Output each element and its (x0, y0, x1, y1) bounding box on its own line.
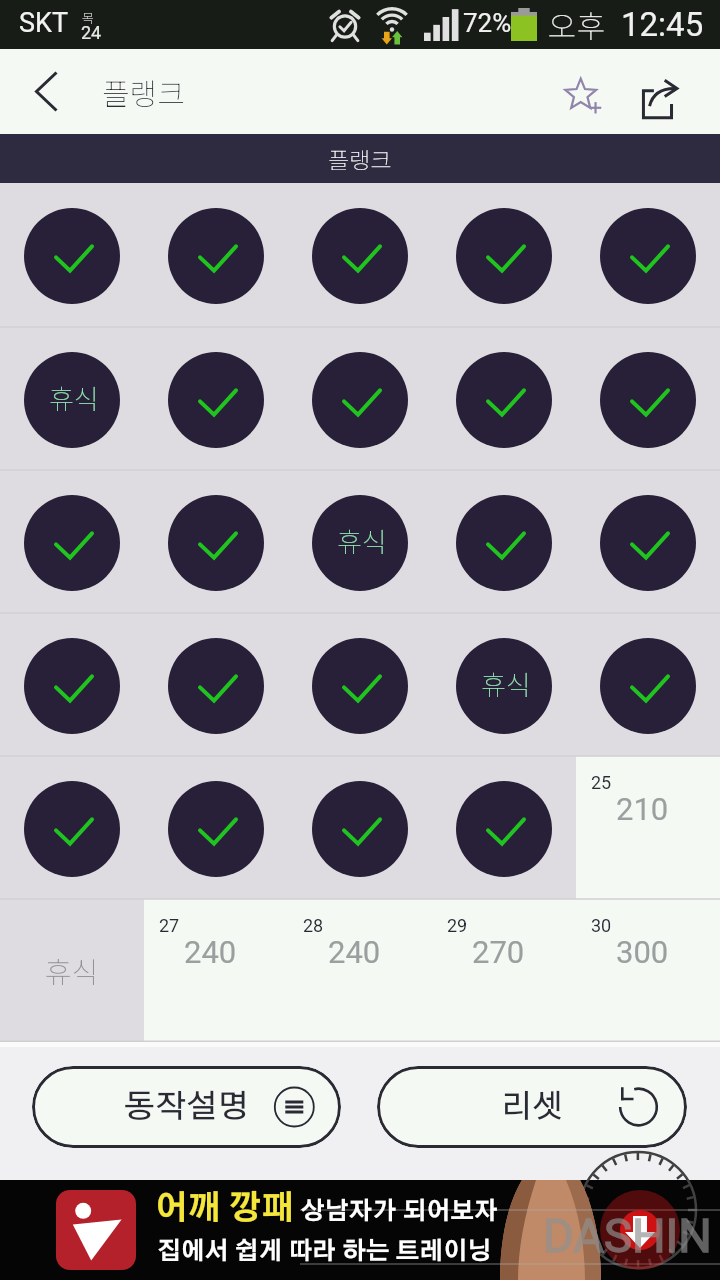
button[interactable]: 휴식 (0, 327, 144, 470)
staticText: 동작설명 (124, 1091, 249, 1123)
button[interactable] (0, 470, 144, 613)
button[interactable] (432, 756, 576, 899)
button[interactable]: 리셋 (377, 1066, 687, 1148)
staticText: 240 (184, 934, 237, 970)
button[interactable]: 동작설명 (32, 1066, 341, 1148)
staticText: 휴식 (49, 378, 99, 417)
button[interactable] (576, 470, 720, 613)
button[interactable]: DASHIN (0, 1180, 720, 1280)
staticText: 28 (303, 915, 324, 936)
staticText: 플랭크 (102, 70, 185, 113)
staticText: 27 (159, 915, 180, 936)
button[interactable] (432, 183, 576, 327)
staticText: 상남자가 되어보자 (301, 1200, 499, 1224)
staticText: 30 (591, 915, 612, 936)
button[interactable]: Share (642, 49, 720, 134)
button[interactable] (288, 183, 432, 327)
button[interactable] (144, 756, 288, 899)
button[interactable]: Favorite (552, 49, 642, 134)
button[interactable]: 29 (432, 899, 576, 1042)
button[interactable] (432, 470, 576, 613)
staticText: DASHIN (543, 1208, 712, 1263)
staticText: 리셋 (501, 1091, 564, 1123)
button[interactable]: 27 (144, 899, 288, 1042)
staticText: 어깨 깡패 (155, 1193, 295, 1226)
button[interactable]: 휴식 (288, 470, 432, 613)
button[interactable] (144, 183, 288, 327)
staticText: 300 (616, 934, 669, 970)
staticText: 12:45 (621, 5, 704, 44)
button[interactable]: 25 (576, 756, 720, 899)
staticText: SKT (19, 7, 69, 39)
button[interactable] (0, 183, 144, 327)
button[interactable] (288, 756, 432, 899)
staticText: 24 (81, 22, 102, 43)
staticText: 오후 (548, 2, 606, 47)
button[interactable] (576, 613, 720, 756)
button[interactable]: 휴식 (0, 899, 144, 1042)
button[interactable] (288, 327, 432, 470)
button[interactable] (144, 470, 288, 613)
staticText: 휴식 (481, 664, 531, 703)
button[interactable] (0, 756, 144, 899)
staticText: 휴식 (45, 949, 99, 991)
button[interactable] (144, 613, 288, 756)
button[interactable]: 30 (576, 899, 720, 1042)
button[interactable] (288, 613, 432, 756)
staticText: 25 (591, 772, 612, 793)
staticText: 210 (616, 791, 669, 827)
staticText: 240 (328, 934, 381, 970)
button[interactable]: 휴식 (432, 613, 576, 756)
staticText: 집에서 쉽게 따라 하는 트레이닝 (157, 1240, 492, 1264)
button[interactable] (144, 327, 288, 470)
staticText: 72% (463, 8, 512, 38)
staticText: 휴식 (337, 521, 387, 560)
button[interactable] (0, 613, 144, 756)
button[interactable]: Back (0, 49, 92, 134)
button[interactable]: 28 (288, 899, 432, 1042)
button[interactable] (432, 327, 576, 470)
staticText: 플랭크 (328, 142, 392, 175)
staticText: 270 (472, 934, 525, 970)
staticText: 29 (447, 915, 468, 936)
button[interactable] (576, 183, 720, 327)
button[interactable] (576, 327, 720, 470)
staticText: 목 (82, 8, 94, 27)
